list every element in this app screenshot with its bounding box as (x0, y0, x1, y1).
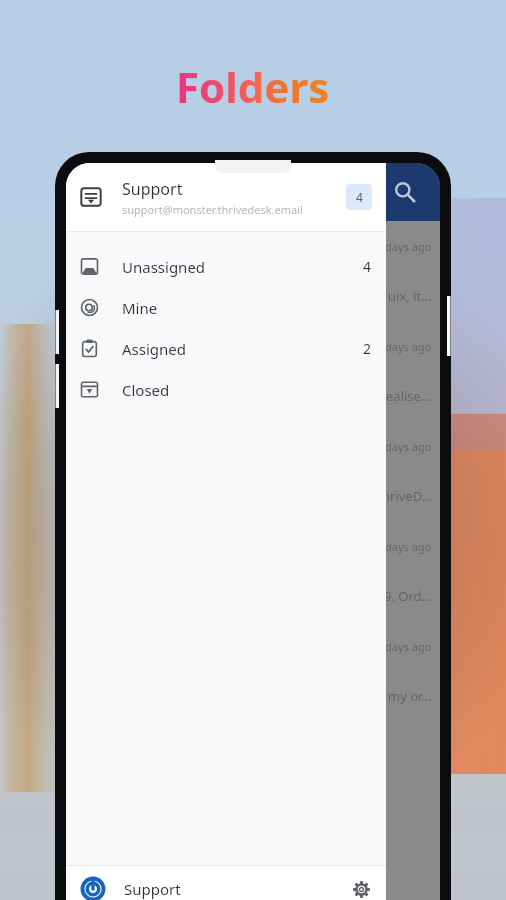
staticText: days ago (385, 239, 432, 254)
button[interactable]: Support (66, 866, 386, 900)
staticText: days ago (385, 339, 432, 354)
staticText: support@monster.thrivedesk.email (122, 202, 303, 217)
staticText: Assigned (122, 339, 363, 359)
button[interactable]: Assigned (66, 328, 386, 369)
staticText: days ago (385, 539, 432, 554)
button[interactable]: Mine (66, 287, 386, 328)
staticText: ealise… (386, 387, 432, 405)
staticText: days ago (385, 439, 432, 454)
staticText: uix, it… (388, 287, 432, 305)
staticText: 4 (356, 189, 363, 205)
staticText: Mine (122, 298, 372, 318)
staticText: Unassigned (122, 257, 363, 277)
staticText: 2 (363, 339, 372, 358)
staticText: my or… (388, 687, 432, 705)
other: Search (394, 181, 416, 203)
staticText: Support (122, 178, 183, 200)
staticText: 9. Ord… (384, 587, 432, 605)
staticText: Folders (176, 58, 330, 115)
staticText: Support (124, 879, 181, 899)
button[interactable]: Settings (350, 878, 372, 900)
staticText: days ago (385, 639, 432, 654)
button[interactable]: Closed (66, 369, 386, 410)
button[interactable]: Unassigned (66, 246, 386, 287)
staticText: Closed (122, 380, 372, 400)
staticText: 4 (363, 257, 372, 276)
button[interactable]: Support (66, 163, 386, 231)
staticText: hriveD… (382, 487, 432, 505)
